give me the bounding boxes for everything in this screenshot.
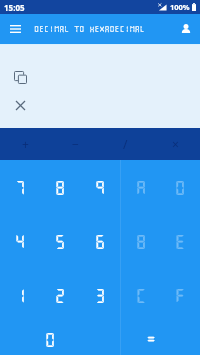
button[interactable]: 3 <box>80 268 120 322</box>
staticText: D <box>174 178 186 196</box>
button[interactable]: 5 <box>40 214 80 268</box>
button[interactable]: E <box>160 214 200 268</box>
staticText: × <box>172 136 179 152</box>
button[interactable]: F <box>160 268 200 322</box>
staticText: 3 <box>94 286 106 304</box>
staticText: 0 <box>44 330 56 348</box>
staticText: F <box>174 286 186 304</box>
button[interactable]: Copy <box>12 69 29 86</box>
staticText: 7 <box>14 178 26 196</box>
button[interactable]: 7 <box>0 160 40 214</box>
button[interactable]: 4 <box>0 214 40 268</box>
button[interactable]: 0 <box>0 322 100 355</box>
staticText: 1 <box>14 286 26 304</box>
staticText: 8 <box>54 178 66 196</box>
staticText: / <box>123 136 128 152</box>
button[interactable]: A <box>121 160 160 214</box>
staticText: DECIMAL TO HEXADECIMAL <box>34 25 145 33</box>
button[interactable]: 9 <box>80 160 120 214</box>
staticText: 9 <box>94 178 106 196</box>
staticText: 5 <box>54 232 66 250</box>
button[interactable]: 8 <box>40 160 80 214</box>
staticText: + <box>22 136 29 152</box>
staticText: − <box>72 136 79 152</box>
button[interactable]: Clear <box>12 97 29 114</box>
staticText: 15:05 <box>4 2 25 13</box>
staticText: A <box>135 178 147 196</box>
button[interactable]: 1 <box>0 268 40 322</box>
staticText: B <box>135 232 147 250</box>
button[interactable]: Account <box>177 20 195 38</box>
button[interactable]: Menu <box>3 17 27 41</box>
staticText: 4 <box>14 232 26 250</box>
button[interactable]: C <box>121 268 160 322</box>
staticText: E <box>174 232 186 250</box>
staticText: = <box>145 330 157 348</box>
button[interactable]: D <box>160 160 200 214</box>
button[interactable]: B <box>121 214 160 268</box>
staticText: C <box>135 286 147 304</box>
button[interactable]: 6 <box>80 214 120 268</box>
staticText: 100% <box>170 2 190 12</box>
staticText: 2 <box>54 286 66 304</box>
button[interactable]: 2 <box>40 268 80 322</box>
staticText: 6 <box>94 232 106 250</box>
button[interactable]: = <box>121 322 181 355</box>
